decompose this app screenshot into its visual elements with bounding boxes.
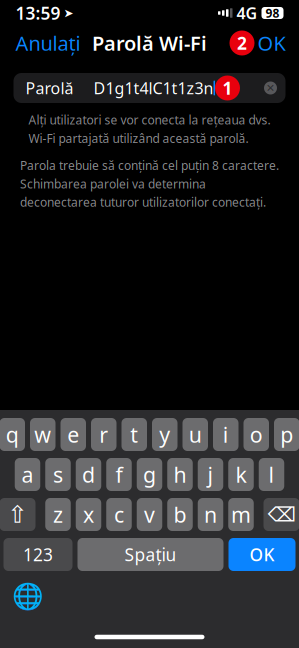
button[interactable]: o (243, 418, 269, 451)
staticText: D1g1t4lC1t1z3n (93, 77, 213, 99)
staticText: z (53, 500, 63, 529)
staticText: r (99, 420, 108, 449)
staticText: i (223, 420, 229, 449)
button[interactable]: l (259, 458, 284, 491)
button[interactable]: OK (228, 538, 295, 571)
staticText: Alți utilizatori se vor conecta la rețea… (28, 112, 270, 146)
staticText: f (115, 460, 122, 489)
button[interactable]: a (15, 458, 40, 491)
staticText: 13:59 (15, 1, 60, 24)
button[interactable]: t (121, 418, 147, 451)
staticText: n (204, 500, 217, 529)
button[interactable]: 123 (3, 538, 72, 571)
staticText: q (6, 420, 19, 449)
staticText: s (53, 460, 63, 489)
staticText: a (21, 460, 33, 489)
staticText: 4G (236, 2, 257, 24)
staticText: OK (249, 543, 274, 566)
staticText: Parolă Wi-Fi (92, 30, 207, 56)
staticText: OK (257, 30, 285, 56)
staticText: j (207, 460, 213, 489)
staticText: u (189, 420, 202, 449)
button[interactable]: y (152, 418, 177, 451)
button[interactable]: e (60, 418, 86, 451)
staticText: x (83, 500, 94, 529)
button[interactable]: Clear text (257, 74, 283, 102)
staticText: g (143, 460, 156, 489)
button[interactable]: v (137, 498, 162, 531)
staticText: 123 (23, 543, 53, 566)
staticText: t (130, 420, 138, 449)
button[interactable]: s (45, 458, 71, 491)
button[interactable]: h (167, 458, 193, 491)
button[interactable]: i (213, 418, 238, 451)
button[interactable]: Next keyboard (10, 582, 44, 610)
button[interactable]: c (106, 498, 132, 531)
staticText: 🌐 (11, 581, 43, 610)
staticText: w (34, 420, 51, 449)
button[interactable]: Spațiu (77, 538, 223, 571)
button[interactable]: u (182, 418, 208, 451)
button[interactable]: j (198, 458, 223, 491)
button[interactable]: q (0, 418, 25, 451)
staticText: v (144, 500, 155, 529)
button[interactable]: p (274, 418, 299, 451)
button[interactable]: Delete (263, 498, 299, 531)
staticText: y (159, 420, 170, 449)
button[interactable]: Shift (0, 498, 35, 531)
staticText: d (82, 460, 95, 489)
staticText: Parola trebuie să conțină cel puțin 8 ca… (20, 157, 279, 210)
staticText: Anulați (15, 30, 80, 56)
button[interactable]: r (91, 418, 116, 451)
button[interactable]: z (45, 498, 71, 531)
staticText: c (114, 500, 124, 529)
staticText: ⌫ (267, 503, 295, 526)
button[interactable]: w (30, 418, 55, 451)
button[interactable]: m (228, 498, 254, 531)
staticText: h (173, 460, 186, 489)
staticText: m (231, 500, 251, 529)
staticText: l (268, 460, 274, 489)
staticText: 1 (222, 76, 232, 99)
staticText: 2 (237, 31, 247, 54)
button[interactable]: f (106, 458, 132, 491)
staticText: ➤ (63, 6, 73, 20)
staticText: 98 (265, 5, 279, 21)
button[interactable]: b (167, 498, 193, 531)
button[interactable]: k (228, 458, 254, 491)
button[interactable]: 2 (229, 26, 299, 60)
button[interactable]: g (137, 458, 162, 491)
staticText: o (250, 420, 263, 449)
staticText: e (67, 420, 79, 449)
staticText: k (235, 460, 246, 489)
button[interactable]: x (76, 498, 101, 531)
button[interactable]: n (198, 498, 223, 531)
staticText: ✕ (266, 82, 275, 94)
staticText: b (173, 500, 186, 529)
staticText: Spațiu (124, 543, 176, 566)
staticText: ⇧ (7, 501, 27, 528)
staticText: Parolă (25, 77, 73, 99)
button[interactable]: d (76, 458, 101, 491)
button[interactable]: Anulați (0, 26, 99, 60)
staticText: p (280, 420, 293, 449)
